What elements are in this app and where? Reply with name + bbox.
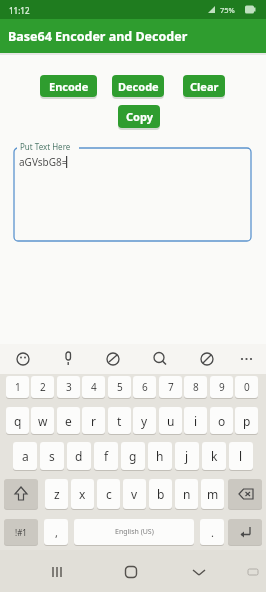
button[interactable] <box>228 479 262 509</box>
staticText: Clear <box>190 79 219 94</box>
button[interactable]: l <box>229 442 253 470</box>
staticText: 0 <box>244 380 250 394</box>
staticText: 7 <box>168 380 174 394</box>
button[interactable]: u <box>159 407 182 434</box>
staticText: i <box>194 413 198 429</box>
staticText: . <box>211 525 214 540</box>
button[interactable]: c <box>97 479 120 509</box>
button[interactable] <box>228 519 262 545</box>
button[interactable]: 7 <box>159 376 182 398</box>
button[interactable]: 2 <box>31 376 54 398</box>
staticText: v <box>131 486 138 502</box>
staticText: h <box>156 448 164 464</box>
button[interactable]: 1 <box>6 376 29 398</box>
button[interactable]: n <box>175 479 198 509</box>
button[interactable]: f <box>94 442 118 470</box>
staticText: Copy <box>126 109 153 124</box>
staticText: r <box>91 413 96 429</box>
staticText: f <box>104 448 109 464</box>
button[interactable]: j <box>175 442 199 470</box>
button[interactable]: m <box>201 479 224 509</box>
staticText: 6 <box>142 380 148 394</box>
button[interactable]: 3 <box>57 376 80 398</box>
button[interactable] <box>4 479 38 509</box>
staticText: 9 <box>219 380 225 394</box>
button[interactable]: e <box>57 407 80 434</box>
button[interactable] <box>56 346 80 372</box>
button[interactable]: !#1 <box>4 519 38 545</box>
button[interactable] <box>11 346 35 372</box>
button[interactable]: a <box>13 442 37 470</box>
staticText: j <box>185 448 189 464</box>
staticText: 4 <box>91 380 97 394</box>
staticText: 11:12 <box>9 5 30 16</box>
staticText: 3 <box>66 380 72 394</box>
button[interactable]: Encode <box>40 75 97 97</box>
button[interactable]: x <box>71 479 94 509</box>
staticText: 5 <box>117 380 123 394</box>
button[interactable] <box>101 346 125 372</box>
staticText: b <box>157 486 165 502</box>
button[interactable]: Clear <box>183 75 225 97</box>
button[interactable]: s <box>40 442 64 470</box>
button[interactable]: y <box>133 407 156 434</box>
button[interactable]: 0 <box>235 376 258 398</box>
staticText: y <box>141 413 148 429</box>
button[interactable]: 8 <box>184 376 207 398</box>
staticText: d <box>75 448 83 464</box>
staticText: 1 <box>15 380 21 394</box>
button[interactable]: 5 <box>108 376 131 398</box>
button[interactable]: p <box>235 407 258 434</box>
button[interactable] <box>148 346 172 372</box>
staticText: Put Text Here <box>20 141 71 152</box>
button[interactable]: English (US) <box>74 519 194 545</box>
staticText: p <box>243 413 251 429</box>
button[interactable]: i <box>184 407 207 434</box>
button[interactable]: q <box>6 407 29 434</box>
staticText: c <box>106 486 112 502</box>
staticText: , <box>55 525 58 540</box>
staticText: !#1 <box>15 527 27 538</box>
staticText: n <box>183 486 191 502</box>
staticText: z <box>54 486 60 502</box>
button[interactable]: o <box>210 407 233 434</box>
button[interactable]: 6 <box>133 376 156 398</box>
staticText: q <box>14 413 22 429</box>
button[interactable] <box>37 556 77 586</box>
staticText: aGVsbG8= <box>19 155 68 169</box>
button[interactable] <box>195 346 219 372</box>
staticText: t <box>117 413 122 429</box>
staticText: x <box>79 486 86 502</box>
button[interactable] <box>179 556 219 586</box>
button[interactable]: h <box>148 442 172 470</box>
button[interactable]: 4 <box>82 376 105 398</box>
button[interactable]: v <box>123 479 146 509</box>
staticText: 75% <box>220 5 235 15</box>
staticText: a <box>22 448 29 464</box>
button[interactable]: 9 <box>210 376 233 398</box>
button[interactable]: . <box>200 519 224 545</box>
button[interactable]: g <box>121 442 145 470</box>
staticText: k <box>211 448 218 464</box>
button[interactable]: r <box>82 407 105 434</box>
staticText: 2 <box>40 380 46 394</box>
staticText: 8 <box>193 380 199 394</box>
button[interactable]: z <box>45 479 68 509</box>
button[interactable]: k <box>202 442 226 470</box>
button[interactable] <box>111 556 151 586</box>
button[interactable] <box>234 346 258 372</box>
button[interactable]: t <box>108 407 131 434</box>
button[interactable]: w <box>31 407 54 434</box>
staticText: o <box>218 413 226 429</box>
button[interactable]: , <box>44 519 68 545</box>
staticText: w <box>38 413 48 429</box>
staticText: Decode <box>118 79 159 94</box>
staticText: English (US) <box>115 527 154 537</box>
staticText: g <box>129 448 137 464</box>
staticText: m <box>207 486 219 502</box>
button[interactable]: Decode <box>112 75 164 97</box>
staticText: e <box>65 413 72 429</box>
button[interactable]: Copy <box>118 105 160 128</box>
button[interactable]: b <box>149 479 172 509</box>
button[interactable]: d <box>67 442 91 470</box>
